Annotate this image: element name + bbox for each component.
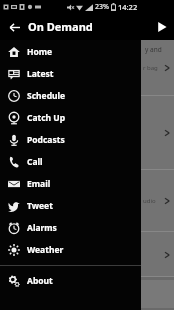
button[interactable]: Podcasts [0, 129, 141, 151]
button[interactable]: Alarms [0, 217, 141, 239]
button[interactable]: About [0, 270, 141, 292]
button[interactable]: Home [0, 41, 141, 63]
staticText: Catch Up [27, 112, 66, 124]
staticText: Alarms [27, 222, 57, 234]
button[interactable]: Email [0, 173, 141, 195]
staticText: Tweet [27, 200, 53, 212]
staticText: 14:22 [118, 2, 138, 12]
button[interactable]: Play [154, 19, 170, 35]
staticText: Weather [27, 244, 64, 256]
button[interactable]: LISTEN TO [0, 280, 174, 308]
button[interactable]: Tweet [0, 195, 141, 217]
staticText: r bag [143, 64, 158, 72]
button[interactable]: y and [0, 40, 174, 96]
staticText: Schedule [27, 90, 66, 102]
staticText: About [27, 275, 53, 287]
staticText: Email [27, 178, 51, 190]
staticText: On Demand [28, 19, 93, 34]
staticText: Home [27, 46, 53, 58]
button[interactable]: Schedule [0, 85, 141, 107]
button[interactable] [0, 96, 174, 170]
button[interactable]: Call [0, 151, 141, 173]
staticText: 23% [95, 2, 109, 12]
button[interactable]: Catch Up [0, 107, 141, 129]
button[interactable]: Latest [0, 63, 141, 85]
staticText: udio [143, 197, 156, 205]
staticText: Podcasts [27, 134, 65, 146]
button[interactable]: Weather [0, 239, 141, 261]
staticText: Latest [27, 68, 54, 80]
button[interactable] [0, 232, 174, 277]
staticText: y and [145, 45, 162, 54]
staticText: Call [27, 156, 43, 168]
button[interactable]: udio [0, 170, 174, 232]
button[interactable]: Back [4, 17, 24, 37]
